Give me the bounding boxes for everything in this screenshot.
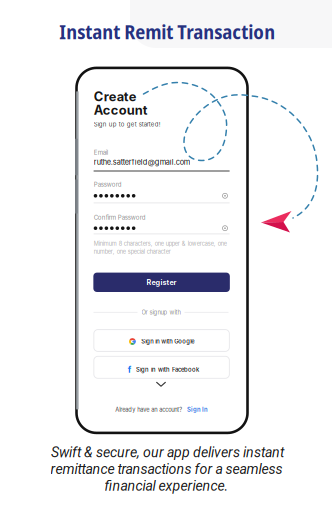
staticText: Swift & secure, our app delivers instant xyxy=(51,444,284,461)
staticText: ruthe.satterfield@gmail.com xyxy=(94,157,190,166)
button[interactable]: Register xyxy=(93,273,230,292)
button[interactable]: f xyxy=(94,356,229,378)
staticText: financial experience. xyxy=(105,477,229,494)
staticText: Email xyxy=(94,149,108,156)
staticText: Password xyxy=(94,181,122,188)
staticText: Sign In xyxy=(187,406,208,413)
staticText: Register xyxy=(147,278,177,287)
staticText: Account xyxy=(94,102,148,118)
staticText: Instant Remit Transaction xyxy=(59,18,275,45)
staticText: Sign up to get started! xyxy=(94,121,161,128)
staticText: f xyxy=(128,364,132,375)
staticText: Sign in with Google xyxy=(141,338,194,345)
button[interactable]: Sign in with Google xyxy=(94,330,229,351)
staticText: Minimum 8 characters, one upper & lowerc… xyxy=(94,240,227,247)
staticText: Already have an account? xyxy=(115,406,182,413)
staticText: number, one special character xyxy=(94,248,171,255)
staticText: Confirm Password xyxy=(94,214,146,221)
staticText: Or signup with xyxy=(142,309,181,316)
staticText: Create xyxy=(94,89,137,104)
staticText: Sign in with Facebook xyxy=(136,366,199,373)
staticText: remittance transactions for a seamless xyxy=(50,461,282,477)
